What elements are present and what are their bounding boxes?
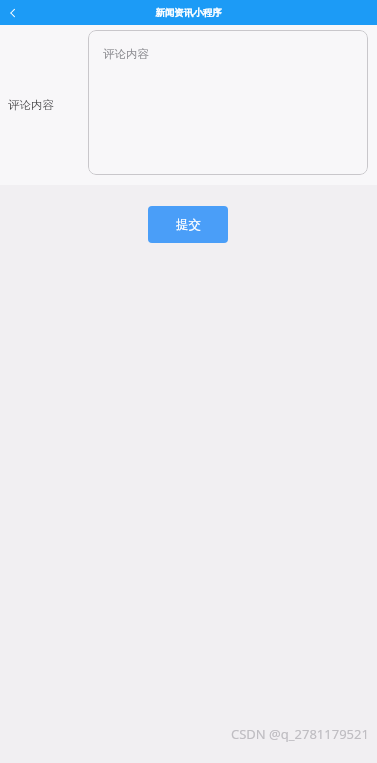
button[interactable]: 评论内容 [88, 30, 368, 175]
staticText: 评论内容 [8, 98, 54, 112]
staticText: 评论内容 [103, 47, 149, 61]
button[interactable]: Back [0, 0, 26, 25]
staticText: 新闻资讯小程序 [155, 7, 222, 19]
staticText: CSDN @q_2781179521 [231, 725, 369, 743]
staticText: 提交 [176, 217, 201, 233]
button[interactable]: 提交 [148, 206, 228, 243]
